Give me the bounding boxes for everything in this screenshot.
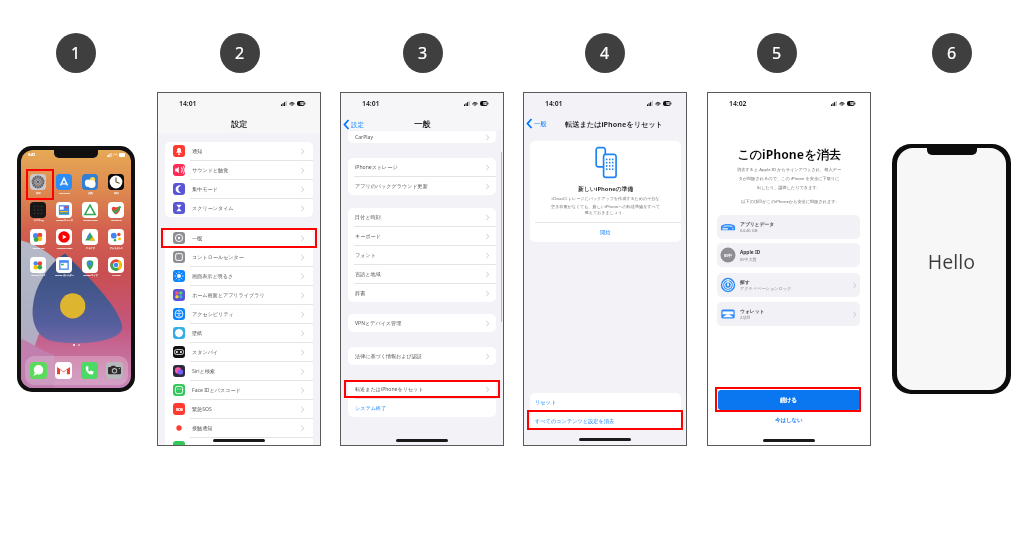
staticText: フォント bbox=[355, 252, 486, 258]
staticText: このiPhoneを消去 bbox=[707, 146, 871, 163]
staticText: Hello bbox=[897, 248, 1006, 275]
button[interactable]: 言語と地域 bbox=[348, 265, 496, 283]
staticText: 14:01 bbox=[362, 99, 380, 108]
button[interactable]: 一般 bbox=[527, 119, 547, 128]
staticText: 設定 bbox=[351, 121, 364, 129]
staticText: 一般 bbox=[192, 235, 301, 241]
button[interactable]: 画面表示と明るさ bbox=[165, 267, 313, 285]
button[interactable] bbox=[82, 174, 98, 190]
button[interactable]: Siriと検索 bbox=[165, 362, 313, 380]
staticText: Google カレンダー bbox=[49, 274, 80, 277]
button[interactable]: 法律に基づく情報および認証 bbox=[348, 347, 496, 365]
staticText: 新しいiPhoneの準備 bbox=[578, 185, 634, 193]
button[interactable]: CarPlay bbox=[348, 131, 496, 143]
staticText: CarPlay bbox=[355, 134, 486, 141]
button[interactable] bbox=[30, 174, 46, 190]
button[interactable] bbox=[56, 257, 72, 273]
button[interactable]: 6 bbox=[932, 33, 972, 73]
button[interactable]: ホーム画面とアプリライブラリ bbox=[165, 286, 313, 304]
staticText: iPhoneストレージ bbox=[355, 164, 486, 171]
button[interactable]: 接触通知 bbox=[165, 419, 313, 437]
button[interactable]: 5 bbox=[757, 33, 797, 73]
staticText: 時計 bbox=[101, 192, 131, 195]
staticText: Google ニュース bbox=[49, 219, 80, 222]
staticText: コントロールセンター bbox=[192, 254, 301, 260]
button[interactable]: ウォレット bbox=[717, 302, 860, 326]
button[interactable]: 1 bbox=[56, 33, 96, 73]
button[interactable]: SOS bbox=[165, 400, 313, 418]
button[interactable]: 壁紙 bbox=[165, 324, 313, 342]
button[interactable]: 一般 bbox=[165, 229, 313, 247]
staticText: Google フォト bbox=[23, 274, 54, 277]
button[interactable] bbox=[56, 174, 72, 190]
button[interactable] bbox=[108, 257, 124, 273]
button[interactable]: iPhoneストレージ bbox=[348, 158, 496, 176]
button[interactable] bbox=[108, 202, 124, 218]
staticText: バッテリー bbox=[192, 444, 301, 446]
staticText: 9:41 bbox=[28, 152, 36, 157]
button[interactable] bbox=[82, 257, 98, 273]
button[interactable] bbox=[30, 202, 46, 218]
button[interactable]: 開始 bbox=[530, 223, 681, 242]
button[interactable]: リセット bbox=[530, 393, 681, 411]
button[interactable] bbox=[56, 229, 72, 245]
button[interactable]: VPNとデバイス管理 bbox=[348, 314, 496, 332]
button[interactable] bbox=[30, 229, 46, 245]
staticText: Google Home bbox=[75, 219, 106, 222]
button[interactable] bbox=[30, 257, 46, 273]
staticText: Siriと検索 bbox=[192, 368, 301, 375]
button[interactable]: 3 bbox=[403, 33, 443, 73]
button[interactable]: サウンドと触覚 bbox=[165, 161, 313, 179]
button[interactable]: 設定 bbox=[344, 120, 364, 129]
button[interactable]: バッテリー bbox=[165, 438, 313, 446]
staticText: スタンバイ bbox=[192, 349, 301, 355]
staticText: 12 bbox=[483, 102, 487, 106]
button[interactable] bbox=[55, 362, 72, 379]
button[interactable]: コントロールセンター bbox=[165, 248, 313, 266]
button[interactable]: すべてのコンテンツと設定を消去 bbox=[530, 412, 681, 430]
button[interactable] bbox=[106, 362, 123, 379]
staticText: 接触通知 bbox=[192, 425, 301, 431]
button[interactable]: Face IDとパスコード bbox=[165, 381, 313, 399]
button[interactable] bbox=[81, 362, 98, 379]
staticText: 言語と地域 bbox=[355, 271, 486, 277]
button[interactable]: 続ける bbox=[718, 390, 860, 410]
button[interactable]: アプリとデータ bbox=[717, 215, 860, 239]
staticText: キーボード bbox=[355, 233, 486, 239]
button[interactable]: スタンバイ bbox=[165, 343, 313, 361]
button[interactable]: 2 bbox=[220, 33, 260, 73]
button[interactable]: 辞書 bbox=[348, 284, 496, 302]
staticText: 5 bbox=[772, 42, 782, 64]
staticText: Google Pay bbox=[23, 247, 54, 250]
button[interactable] bbox=[56, 202, 72, 218]
staticText: 以下の項目がこのiPhoneから安全に削除されます: bbox=[713, 199, 865, 205]
button[interactable]: 4 bbox=[585, 33, 625, 73]
staticText: 今はしない bbox=[775, 417, 803, 424]
button[interactable]: 集中モード bbox=[165, 180, 313, 198]
button[interactable]: 田中 bbox=[717, 243, 860, 267]
staticText: ドライブ bbox=[75, 247, 106, 250]
staticText: 1 bbox=[71, 42, 81, 64]
button[interactable] bbox=[108, 174, 124, 190]
button[interactable]: 探す bbox=[717, 273, 860, 297]
staticText: 12 bbox=[666, 102, 670, 106]
button[interactable]: フォント bbox=[348, 246, 496, 264]
staticText: 6 bbox=[947, 42, 957, 64]
button[interactable]: アクセシビリティ bbox=[165, 305, 313, 323]
button[interactable]: アプリのバックグラウンド更新 bbox=[348, 177, 496, 195]
button[interactable]: 通知 bbox=[165, 142, 313, 160]
button[interactable] bbox=[108, 229, 124, 245]
button[interactable]: キーボード bbox=[348, 227, 496, 245]
button[interactable]: 今はしない bbox=[775, 417, 803, 424]
button[interactable] bbox=[82, 229, 98, 245]
button[interactable]: 日付と時刻 bbox=[348, 208, 496, 226]
staticText: 探す bbox=[740, 279, 750, 285]
button[interactable]: システム終了 bbox=[348, 399, 496, 417]
staticText: アプリのバックグラウンド更新 bbox=[355, 183, 486, 189]
button[interactable] bbox=[30, 362, 47, 379]
staticText: iCloudストレージにバックアップを作成するための十分な 空き容量がなくても、… bbox=[551, 196, 660, 216]
staticText: 法律に基づく情報および認証 bbox=[355, 353, 486, 359]
button[interactable]: スクリーンタイム bbox=[165, 199, 313, 217]
button[interactable] bbox=[82, 202, 98, 218]
button[interactable]: 転送またはiPhoneをリセット bbox=[348, 380, 496, 398]
